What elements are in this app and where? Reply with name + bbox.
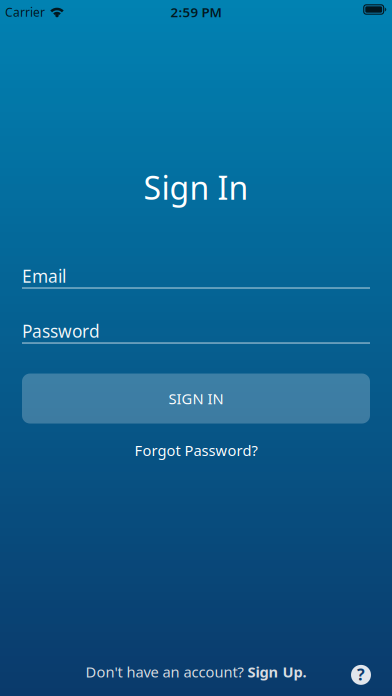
button[interactable]: Email — [22, 264, 370, 288]
staticText: Sign Up. — [247, 662, 306, 682]
button[interactable]: Don't have an account? — [85, 662, 306, 682]
staticText: Carrier — [5, 4, 45, 20]
staticText: Password — [22, 319, 100, 342]
button[interactable]: Help — [351, 664, 371, 686]
button[interactable]: Password — [22, 319, 370, 343]
staticText: ? — [357, 664, 365, 685]
staticText: 2:59 PM — [170, 3, 221, 21]
staticText: Forgot Password? — [134, 440, 257, 460]
staticText: Email — [22, 264, 66, 287]
staticText: Don't have an account? — [85, 662, 247, 682]
staticText: SIGN IN — [168, 389, 223, 408]
staticText: Sign In — [143, 166, 248, 208]
button[interactable]: Forgot Password? — [134, 440, 257, 460]
button[interactable]: SIGN IN — [22, 373, 370, 423]
